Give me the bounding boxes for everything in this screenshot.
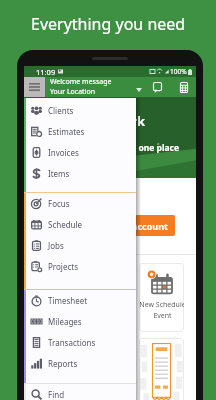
staticText: Estimates — [48, 126, 85, 137]
button[interactable]: Projects — [26, 256, 136, 277]
button[interactable]: Transactions — [26, 332, 136, 353]
staticText: Welcome message — [50, 77, 112, 87]
staticText: Everything in one place — [80, 142, 180, 154]
button[interactable]: Jobs — [26, 235, 136, 256]
button[interactable]: Open navigation drawer — [24, 77, 45, 97]
button[interactable] — [139, 338, 184, 400]
staticText: Your Location — [50, 87, 95, 97]
staticText: Transactions — [48, 337, 96, 348]
button[interactable]: Estimates — [26, 121, 136, 142]
button[interactable]: Find — [26, 384, 136, 400]
staticText: Mileages — [48, 316, 82, 327]
staticText: New Schedule Event — [139, 300, 184, 320]
button[interactable]: Mileages — [26, 311, 136, 332]
button[interactable]: Timesheet — [26, 290, 136, 311]
staticText: Reports — [48, 358, 78, 369]
staticText: Invoices — [48, 147, 79, 158]
button[interactable]: Calculator — [174, 77, 193, 97]
button[interactable]: Create account — [93, 215, 175, 236]
staticText: Timesheet — [48, 295, 88, 306]
button[interactable]: Clients — [26, 100, 136, 121]
staticText: 100% — [170, 67, 187, 76]
button[interactable]: Focus — [26, 193, 136, 214]
button[interactable]: Schedule — [26, 214, 136, 235]
button[interactable]: Reports — [26, 353, 136, 374]
staticText: Jobs — [48, 240, 64, 251]
button[interactable]: New Schedule Event — [139, 263, 184, 332]
staticText: Clients — [48, 105, 74, 116]
staticText: Items — [48, 168, 70, 179]
staticText: 11:09 — [36, 67, 56, 77]
button[interactable]: Items — [26, 163, 136, 184]
staticText: Manage your work — [23, 112, 145, 130]
staticText: Create account — [100, 220, 168, 232]
staticText: Everything you need — [31, 13, 186, 35]
button[interactable]: Messages — [147, 77, 167, 97]
staticText: Find — [48, 389, 65, 400]
staticText: Focus — [48, 198, 70, 209]
staticText: Projects — [48, 261, 78, 272]
staticText: Schedule — [48, 219, 83, 230]
button[interactable]: Invoices — [26, 142, 136, 163]
